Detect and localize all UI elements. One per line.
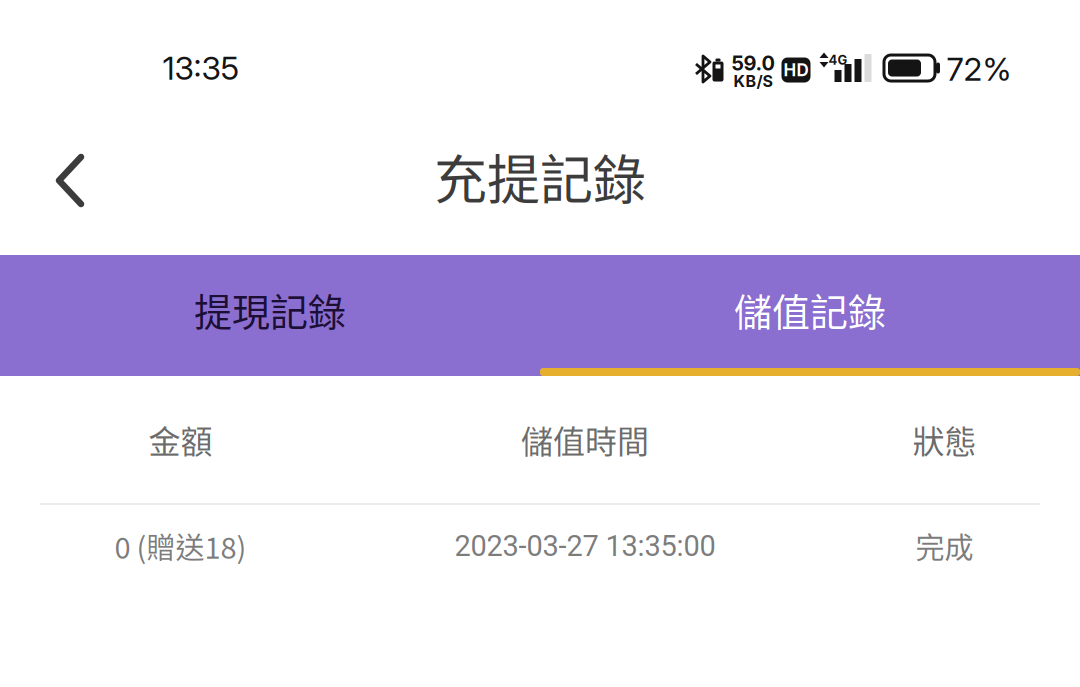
staticText: 59.0 bbox=[731, 51, 774, 75]
staticText: 2023-03-27 13:35:00 bbox=[454, 529, 715, 563]
staticText: 13:35 bbox=[162, 49, 239, 87]
staticText: 0 (贈送18) bbox=[114, 525, 246, 567]
staticText: 提現記錄 bbox=[194, 282, 346, 337]
staticText: 儲值記錄 bbox=[734, 282, 886, 337]
staticText: 儲值時間 bbox=[521, 416, 649, 463]
staticText: 72% bbox=[946, 50, 1011, 88]
staticText: 金額 bbox=[148, 416, 212, 463]
staticText: 4G bbox=[828, 52, 847, 68]
staticText: 狀態 bbox=[912, 416, 976, 463]
staticText: KB/S bbox=[733, 71, 772, 91]
staticText: 完成 bbox=[915, 525, 973, 567]
staticText: HD bbox=[783, 60, 808, 80]
button[interactable]: 0 (贈送18) bbox=[0, 505, 1080, 587]
button[interactable]: 提現記錄 bbox=[0, 255, 540, 376]
button[interactable]: 儲值記錄 bbox=[540, 255, 1080, 376]
staticText: 充提記錄 bbox=[434, 138, 646, 215]
button[interactable]: Back bbox=[0, 130, 120, 235]
